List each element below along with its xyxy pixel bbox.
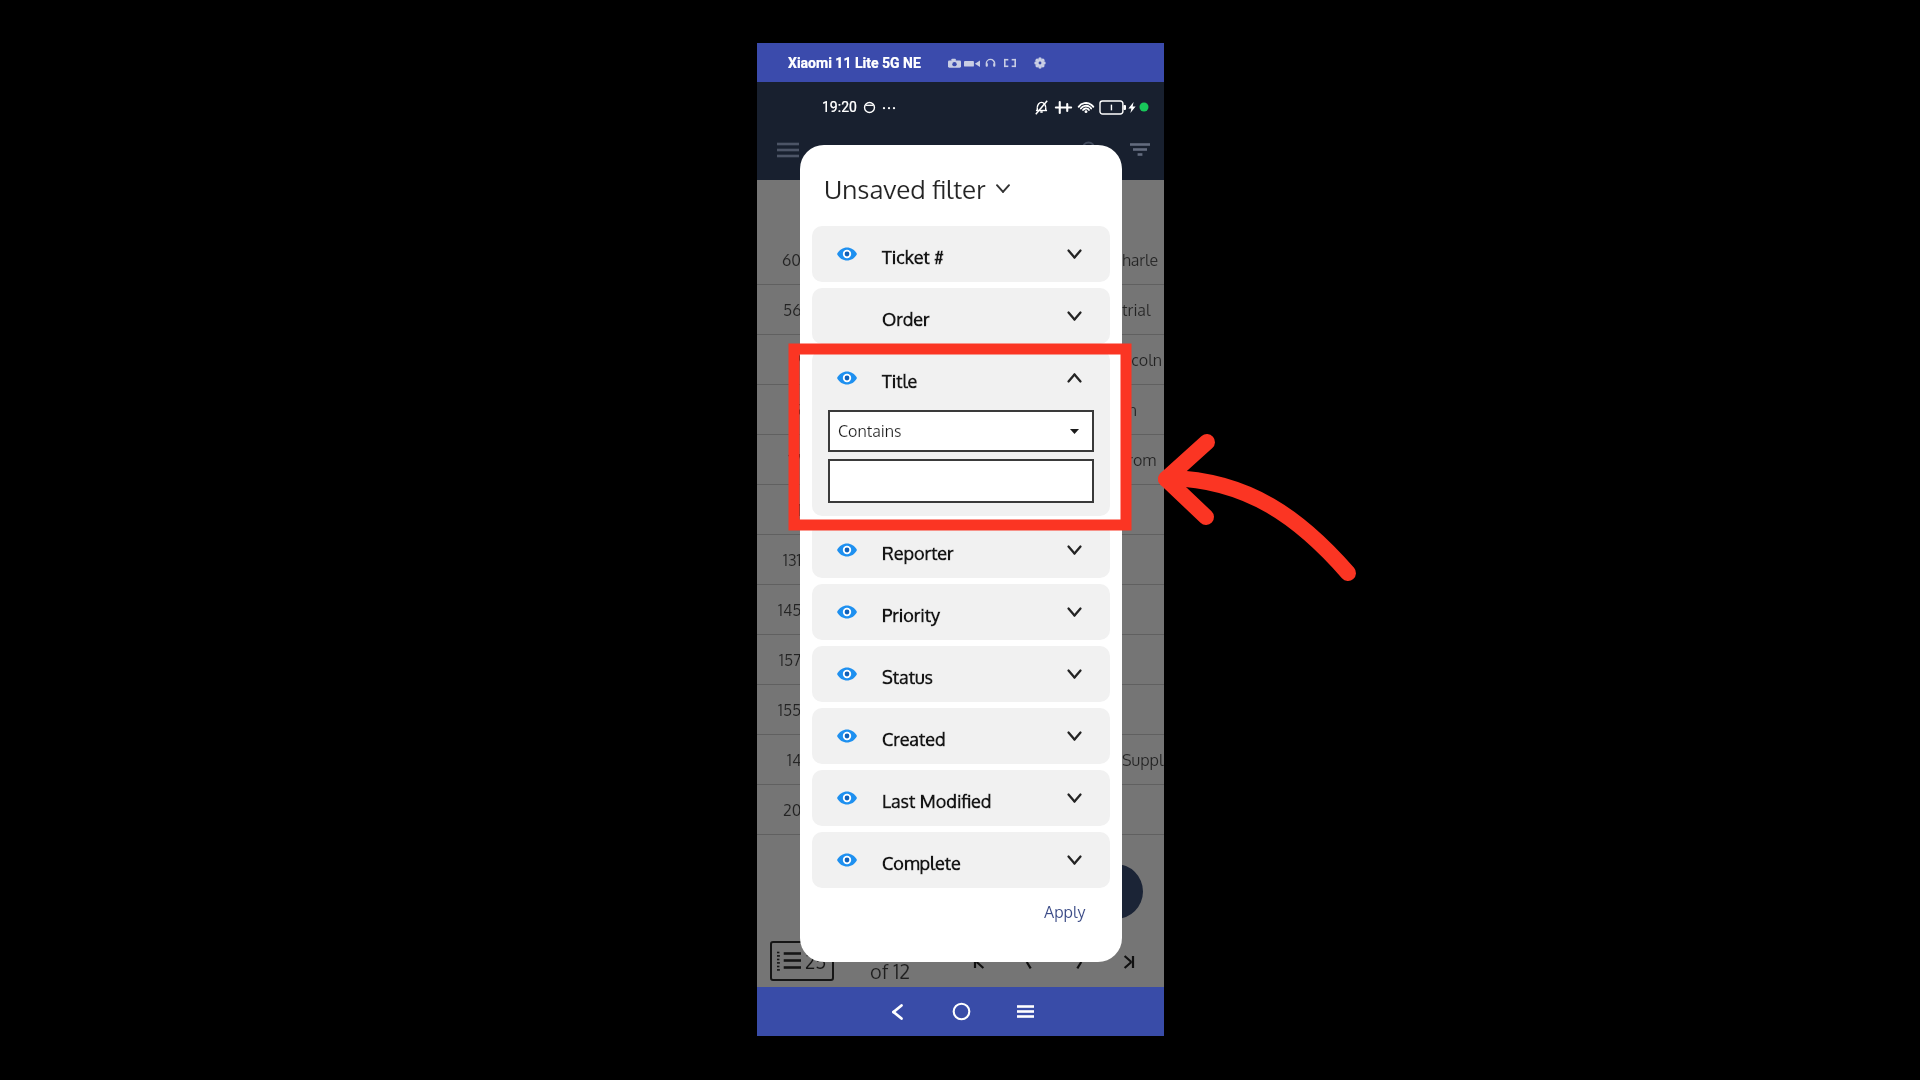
button[interactable]: 25: [770, 941, 834, 981]
staticText: Apply: [1044, 902, 1086, 922]
staticText: of 12: [870, 958, 911, 983]
button[interactable]: Record video: [964, 55, 980, 71]
button[interactable]: Status: [812, 646, 1110, 702]
staticText: Reporter: [882, 542, 954, 565]
button[interactable]: 14: [757, 735, 1164, 785]
staticText: Unsaved filter: [824, 172, 986, 205]
staticText: 131: [783, 550, 802, 570]
button[interactable]: Back: [871, 987, 923, 1036]
button[interactable]: 5: [757, 385, 1164, 435]
button[interactable]: Title: [812, 350, 1110, 516]
button[interactable]: Reporter: [812, 522, 1110, 578]
staticText: 17: [788, 450, 802, 470]
button[interactable]: Priority: [812, 584, 1110, 640]
button[interactable]: Home: [935, 987, 987, 1036]
button[interactable]: Created: [812, 708, 1110, 764]
staticText: Complete: [882, 852, 961, 875]
button[interactable]: Settings: [1032, 55, 1048, 71]
staticText: 60: [782, 250, 802, 270]
staticText: Contains: [838, 421, 902, 441]
staticText: from: [1122, 450, 1157, 470]
staticText: 155: [778, 700, 802, 720]
staticText: 25: [805, 949, 827, 973]
button[interactable]: 145: [757, 585, 1164, 635]
button[interactable]: 20: [757, 785, 1164, 835]
button[interactable]: 157: [757, 635, 1164, 685]
button[interactable]: 56: [757, 285, 1164, 335]
button[interactable]: 11: [757, 485, 1164, 535]
button[interactable]: Menu: [773, 135, 803, 165]
staticText: 11: [792, 500, 802, 520]
staticText: Status: [882, 666, 933, 689]
button[interactable]: Complete: [812, 832, 1110, 888]
button[interactable]: Next page: [1062, 945, 1096, 979]
staticText: Xiaomi 11 Lite 5G NE: [788, 55, 921, 71]
staticText: 20: [783, 800, 802, 820]
button[interactable]: Recent apps: [999, 987, 1051, 1036]
staticText: 5: [792, 400, 802, 420]
staticText: Last Modified: [882, 790, 992, 813]
button[interactable]: 60: [757, 235, 1164, 285]
staticText: 19:20: [822, 99, 857, 115]
staticText: 14: [787, 750, 802, 770]
staticText: ncoln: [1122, 350, 1162, 370]
button[interactable]: Unsaved filter: [824, 172, 1010, 205]
button[interactable]: Ticket #: [812, 226, 1110, 282]
staticText: harleston: [1122, 250, 1164, 270]
staticText: 56: [783, 300, 802, 320]
button[interactable]: Audio: [982, 55, 998, 71]
button[interactable]: 155: [757, 685, 1164, 735]
staticText: rn: [1122, 400, 1138, 420]
button[interactable]: 131: [757, 535, 1164, 585]
staticText: Supplie: [1122, 750, 1164, 770]
staticText: 145: [778, 600, 802, 620]
button[interactable]: Order: [812, 288, 1110, 344]
button[interactable]: Search: [1075, 135, 1105, 165]
button[interactable]: 9: [757, 335, 1164, 385]
button[interactable]: Last Modified: [812, 770, 1110, 826]
button[interactable]: Previous page: [1012, 945, 1046, 979]
button[interactable]: 17: [757, 435, 1164, 485]
button[interactable]: Last page: [1112, 945, 1146, 979]
button[interactable]: New ticket: [1088, 864, 1143, 919]
button[interactable]: Apply: [1044, 902, 1086, 922]
button[interactable]: Contains: [828, 410, 1094, 452]
button[interactable]: [828, 459, 1094, 503]
staticText: Title: [882, 370, 918, 393]
staticText: Created: [882, 728, 946, 751]
button[interactable]: Fullscreen: [1002, 55, 1018, 71]
staticText: trial: [1122, 300, 1151, 320]
staticText: Ticket #: [882, 246, 945, 269]
button[interactable]: Filter: [1125, 135, 1155, 165]
staticText: 157: [779, 650, 802, 670]
button[interactable]: First page: [962, 945, 996, 979]
staticText: Order: [882, 308, 930, 331]
button[interactable]: Screenshot: [946, 55, 962, 71]
staticText: Priority: [882, 604, 941, 627]
staticText: 9: [792, 350, 802, 370]
